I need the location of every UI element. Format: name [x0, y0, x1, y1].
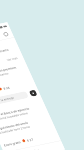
- staticText: Llega entre el 18 y 20 de marzo: [4, 25, 52, 69]
- staticText: Detalle de la compra: [4, 17, 40, 50]
- staticText: Ver todos los detalles: [48, 130, 82, 150]
- staticText: Envío gratis: [20, 75, 40, 94]
- staticText: y confirmá tu pedido online: [32, 92, 71, 128]
- staticText: Talle M - Color azul marino: [14, 52, 51, 87]
- button[interactable]: Back: [0, 32, 7, 42]
- staticText: Autorizar la entrega: [28, 80, 57, 107]
- staticText: Camiseta de algodón premium: [12, 43, 59, 87]
- staticText: Actualizado hace 2 horas: [38, 106, 73, 139]
- staticText: Seguimiento del envío: [36, 102, 71, 135]
- staticText: 9:41: [0, 25, 3, 34]
- staticText: Revisá el Banco de ejercicio: [30, 86, 73, 125]
- staticText: Compraste el 12 de marzo: [2, 25, 43, 63]
- staticText: Envío gratis: [43, 127, 64, 146]
- button[interactable]: Autorizar la entrega: [23, 69, 73, 115]
